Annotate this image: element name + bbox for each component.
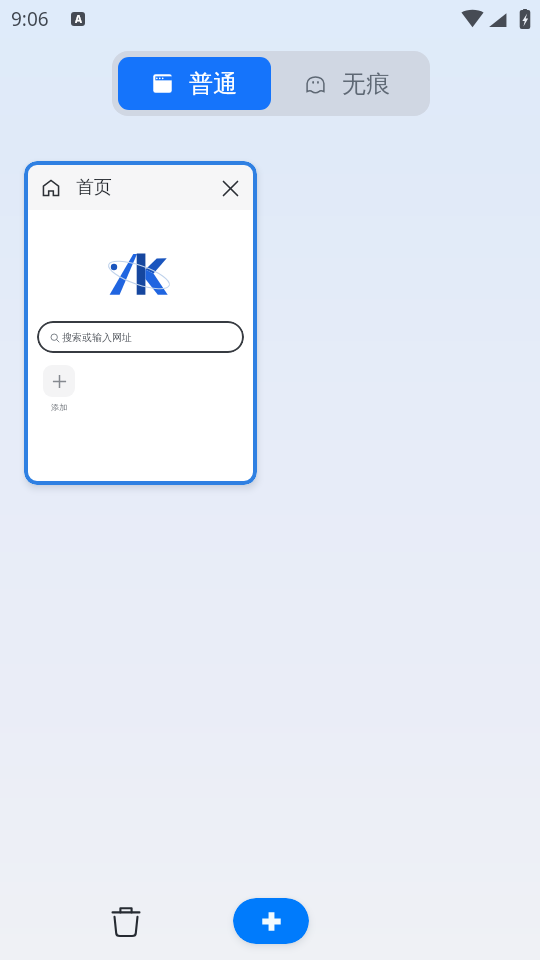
button[interactable]: 无痕 [271,57,424,110]
staticText: 搜索或输入网址 [62,331,132,344]
button[interactable]: 首页 [28,165,253,481]
staticText: A [75,12,82,26]
staticText: 添加 [51,402,67,412]
button[interactable]: Add shortcut [43,365,75,397]
button[interactable]: New tab [233,898,309,944]
button[interactable]: Close tab [217,175,243,201]
button[interactable]: 搜索或输入网址 [37,321,244,353]
button[interactable]: Delete all tabs [104,900,148,944]
staticText: 9:06 [11,6,49,32]
button[interactable]: 普通 [118,57,271,110]
staticText: 无痕 [342,69,390,99]
staticText: 普通 [189,69,237,99]
staticText: 首页 [76,176,112,199]
